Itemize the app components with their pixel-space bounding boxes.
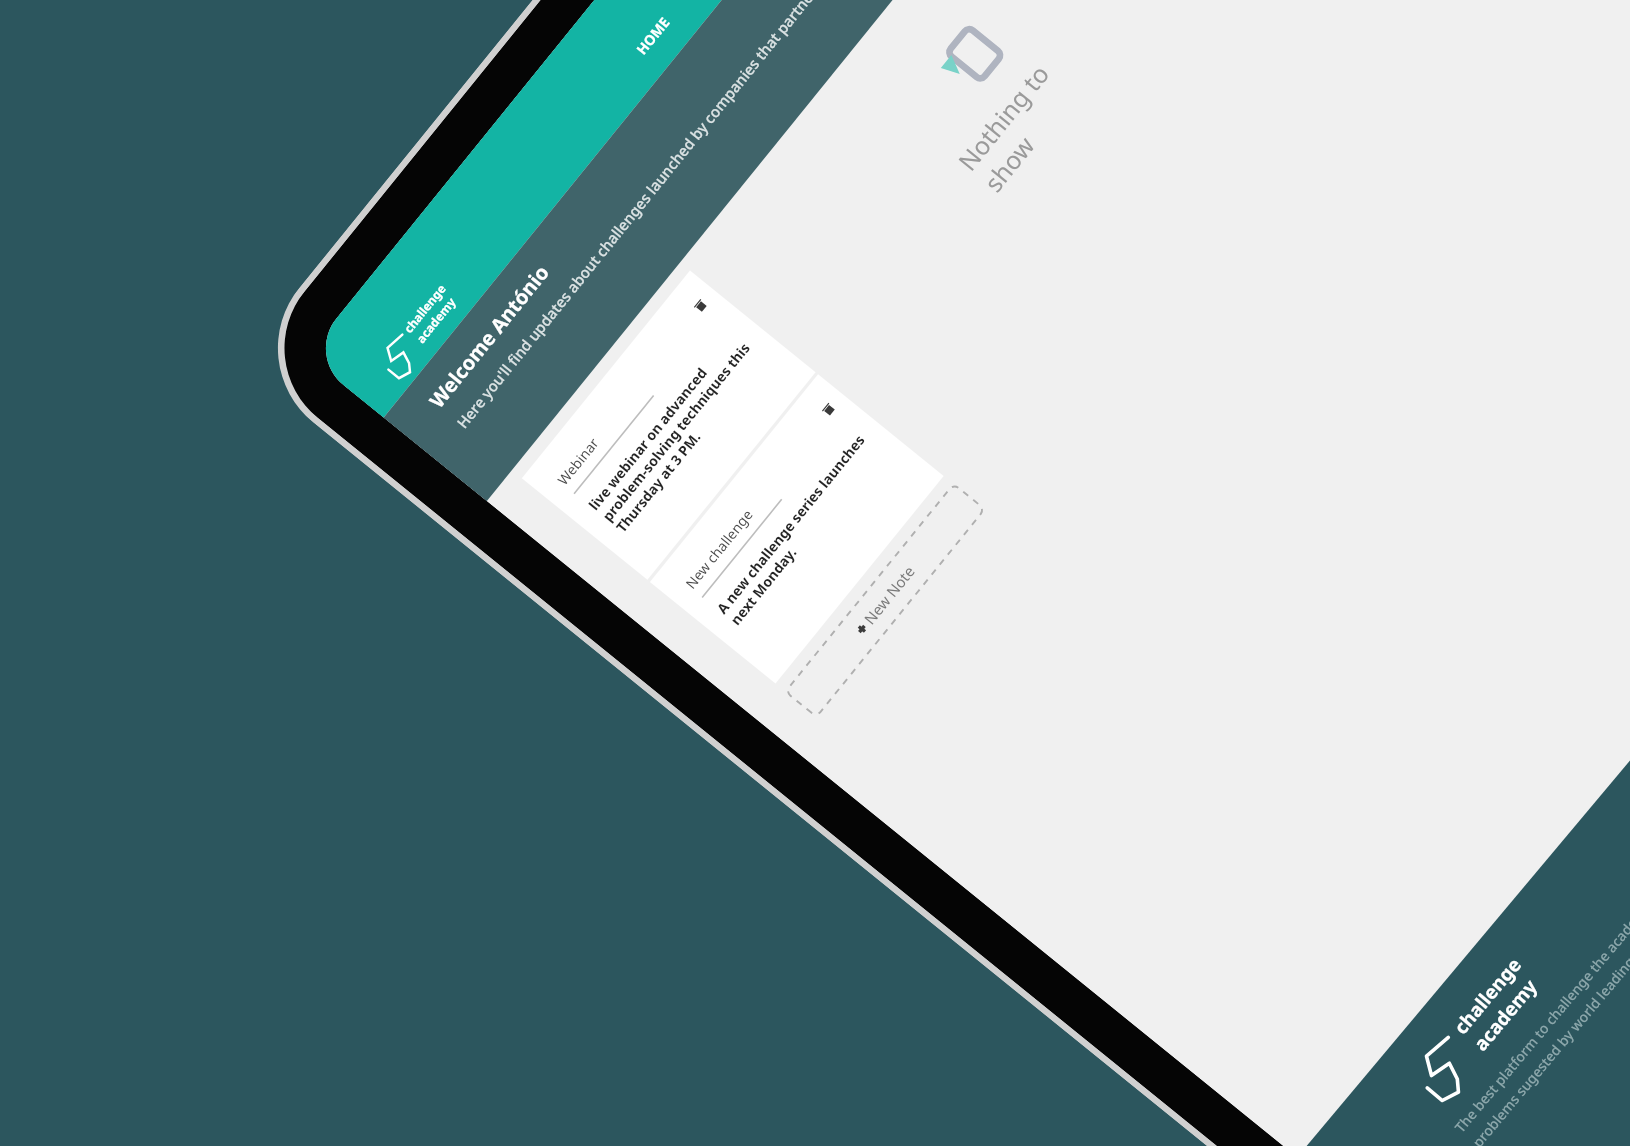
staticText: problems sugested by world leading profe… (1468, 878, 1630, 1146)
staticText: A new challenge series launches next Mon… (713, 426, 887, 629)
staticText: HOME (632, 13, 674, 59)
button[interactable]: New Note (785, 484, 985, 717)
button[interactable]: Webinar (522, 270, 815, 580)
button[interactable]: Delete note (820, 400, 838, 418)
staticText: The best platform to challenge the acade… (1450, 815, 1630, 1136)
staticText: challenge (1448, 952, 1527, 1039)
staticText: New Note (859, 561, 920, 629)
staticText: academy (1468, 974, 1543, 1056)
staticText: Nothing to show (950, 15, 1116, 198)
staticText: Welcome António (423, 260, 555, 413)
staticText: New challenge (682, 505, 758, 593)
staticText: live webinar on advanced problem-solving… (585, 322, 773, 536)
staticText: Here you'll find updates about challenge… (452, 0, 860, 433)
staticText: Webinar (554, 434, 604, 489)
staticText: academy (412, 294, 459, 346)
button[interactable]: Delete note (691, 297, 709, 315)
staticText: challenge (400, 280, 450, 336)
button[interactable]: HOME (621, 2, 685, 70)
button[interactable]: New challenge (650, 374, 944, 684)
